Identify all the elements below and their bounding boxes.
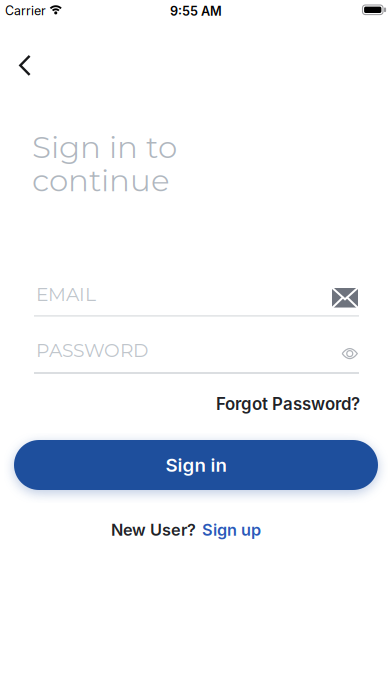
staticText: Sign up bbox=[202, 520, 261, 540]
staticText: PASSWORD bbox=[36, 339, 148, 362]
staticText: Sign in to bbox=[32, 128, 177, 166]
staticText: continue bbox=[32, 161, 170, 199]
staticText: Forgot Password? bbox=[216, 394, 360, 414]
staticText: Sign in bbox=[165, 454, 226, 476]
staticText: Carrier bbox=[5, 3, 46, 18]
button[interactable]: Forgot Password? bbox=[216, 394, 360, 414]
button[interactable] bbox=[3, 43, 47, 87]
button[interactable]: Sign in bbox=[14, 440, 378, 490]
button[interactable]: PASSWORD bbox=[34, 339, 358, 374]
staticText: New User? bbox=[111, 520, 196, 540]
staticText: 9:55 AM bbox=[170, 3, 222, 19]
button[interactable]: EMAIL bbox=[34, 283, 358, 317]
button[interactable]: Sign up bbox=[202, 520, 261, 540]
staticText: EMAIL bbox=[36, 283, 96, 306]
